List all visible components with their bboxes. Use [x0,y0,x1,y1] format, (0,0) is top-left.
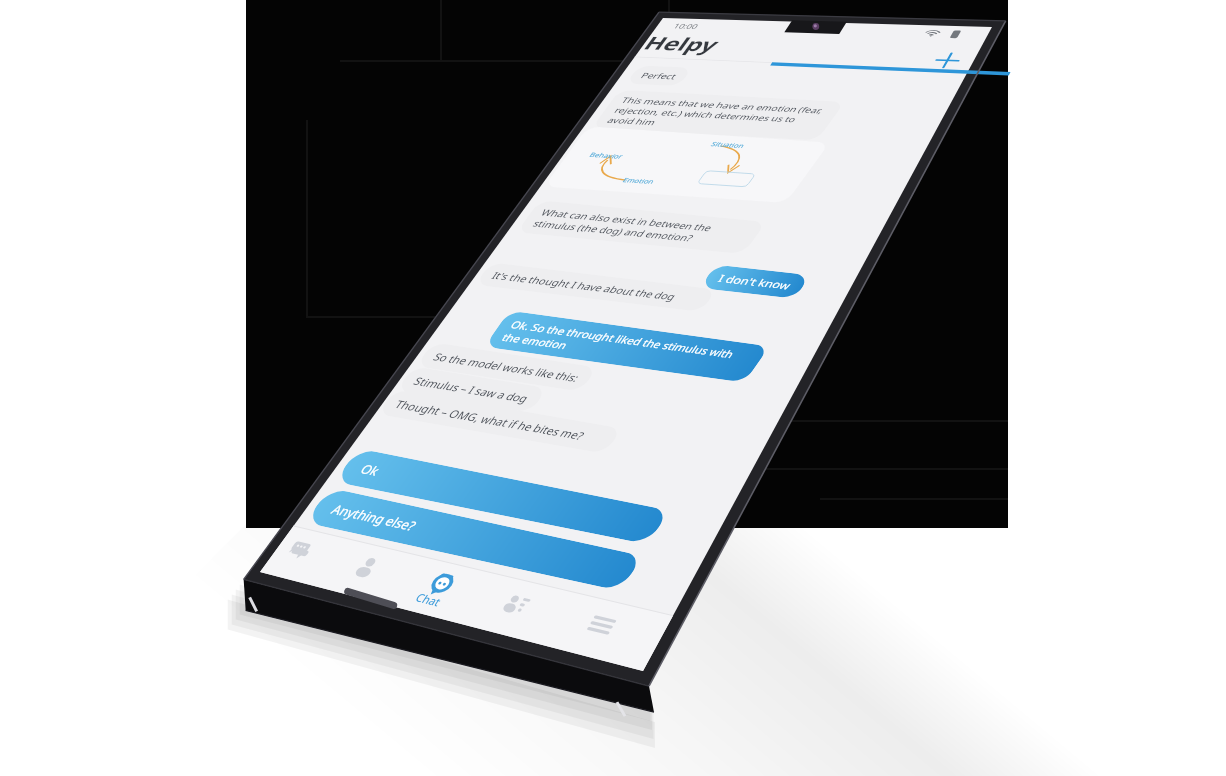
button[interactable]: Menu [546,584,649,679]
staticText: Situation [707,129,749,160]
staticText: Chat [409,581,448,618]
button[interactable]: This means that we have an emotion (fear… [582,15,854,215]
staticText: What can also exist in between the stimu… [525,133,758,321]
button[interactable]: I don't know [694,235,816,328]
button[interactable]: So the model works like this: [409,280,604,454]
button[interactable]: Anything else? [296,365,653,713]
staticText: Thought – OMG, what if he bites me? [389,325,591,514]
staticText: Emotion [619,165,659,196]
button[interactable]: Stimulus – I saw a dog [390,315,554,464]
staticText: This means that we have an emotion (fear… [598,27,839,204]
button[interactable]: Perfect [621,48,697,103]
staticText: Helpy [632,8,732,80]
button[interactable]: Ok. So the throught liked the stimulus w… [475,216,779,477]
button[interactable]: Thought – OMG, what if he bites me? [371,302,629,541]
staticText: Ok. So the throught liked the stimulus w… [492,231,761,462]
button[interactable]: New chat [913,36,982,85]
button[interactable]: Profile [316,531,408,615]
staticText: 10:00 [669,14,703,38]
staticText: So the model works like this: [427,295,586,438]
staticText: Ok [353,454,388,486]
staticText: It's the thought I have about the dog [486,202,683,369]
staticText: Perfect [636,59,682,92]
button[interactable]: Ok [326,327,679,666]
staticText: I don't know [713,249,798,314]
button[interactable]: Chat [389,548,485,635]
button[interactable]: Messages [251,516,339,596]
staticText: Behavior [586,139,628,171]
button[interactable]: Contacts [462,564,562,656]
button[interactable]: It's the thought I have about the dog [469,180,722,394]
staticText: Stimulus – I saw a dog [407,331,536,448]
button[interactable]: What can also exist in between the stimu… [508,120,774,334]
staticText: Anything else? [324,469,425,566]
